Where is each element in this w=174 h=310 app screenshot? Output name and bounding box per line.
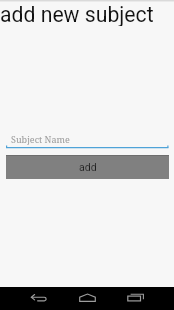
- button[interactable]: Home: [79, 293, 96, 304]
- button[interactable]: add: [6, 155, 169, 179]
- staticText: add new subject: [0, 2, 154, 26]
- staticText: add: [79, 161, 97, 173]
- button[interactable]: Recents: [127, 293, 144, 304]
- staticText: Subject Name: [11, 133, 70, 145]
- button[interactable]: Back: [30, 293, 47, 304]
